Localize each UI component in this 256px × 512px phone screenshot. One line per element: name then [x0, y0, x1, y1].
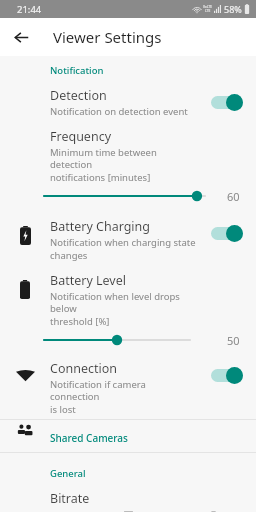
staticText: Notification if camera connection	[50, 378, 196, 403]
button[interactable]: Battery Charging	[0, 211, 256, 265]
staticText: General	[50, 467, 86, 480]
staticText: notifications [minutes]	[50, 171, 151, 184]
button[interactable]: Bitrate	[0, 483, 256, 512]
button[interactable]: Connection	[0, 353, 256, 419]
staticText: Notification when level drops below	[50, 290, 196, 315]
button[interactable]: Toggle	[209, 91, 247, 113]
staticText: Bitrate	[50, 490, 90, 507]
button[interactable]: Back	[8, 24, 34, 50]
staticText: 50	[227, 333, 240, 348]
staticText: threshold [%]	[50, 315, 110, 328]
staticText: 58%	[224, 3, 242, 15]
button[interactable]	[44, 187, 205, 205]
staticText: Minimum time between detection	[50, 146, 196, 171]
staticText: Detection	[50, 87, 107, 104]
staticText: VoLTE	[203, 5, 212, 9]
staticText: LTE	[205, 9, 211, 13]
button[interactable]: Detection	[0, 80, 256, 121]
button[interactable]: Toggle	[209, 222, 247, 244]
staticText: Notification on detection event	[50, 105, 188, 118]
staticText: 60	[227, 189, 240, 204]
staticText: Viewer Settings	[53, 27, 162, 47]
staticText: Notification when charging state	[50, 236, 196, 249]
button[interactable]: Frequency	[0, 121, 256, 187]
button[interactable]: Toggle	[209, 364, 247, 386]
staticText: Shared Cameras	[50, 431, 128, 445]
button[interactable]: Battery Level	[0, 265, 256, 331]
staticText: Battery Charging	[50, 218, 151, 235]
staticText: 21:44	[17, 3, 42, 16]
staticText: Battery Level	[50, 272, 126, 289]
button[interactable]	[44, 331, 190, 349]
staticText: Frequency	[50, 128, 112, 145]
staticText: is lost	[50, 403, 76, 416]
staticText: Connection	[50, 360, 117, 377]
staticText: changes	[50, 249, 88, 262]
staticText: Notification	[50, 64, 104, 77]
button[interactable]: Shared Cameras	[0, 420, 256, 452]
